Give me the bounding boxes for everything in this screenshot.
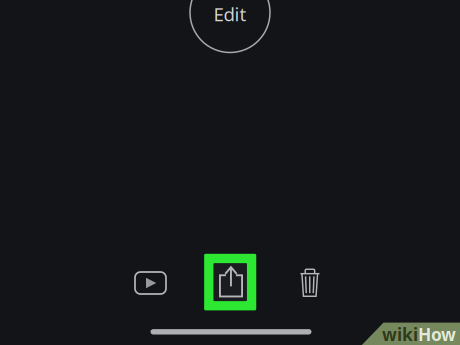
button[interactable]: Delete — [288, 262, 332, 304]
staticText: Edit — [213, 2, 246, 26]
button[interactable]: Edit — [190, 0, 270, 52]
staticText: wiki — [382, 323, 418, 345]
button[interactable]: Share — [204, 254, 256, 310]
button[interactable]: Play — [127, 262, 173, 304]
staticText: How — [418, 323, 456, 345]
